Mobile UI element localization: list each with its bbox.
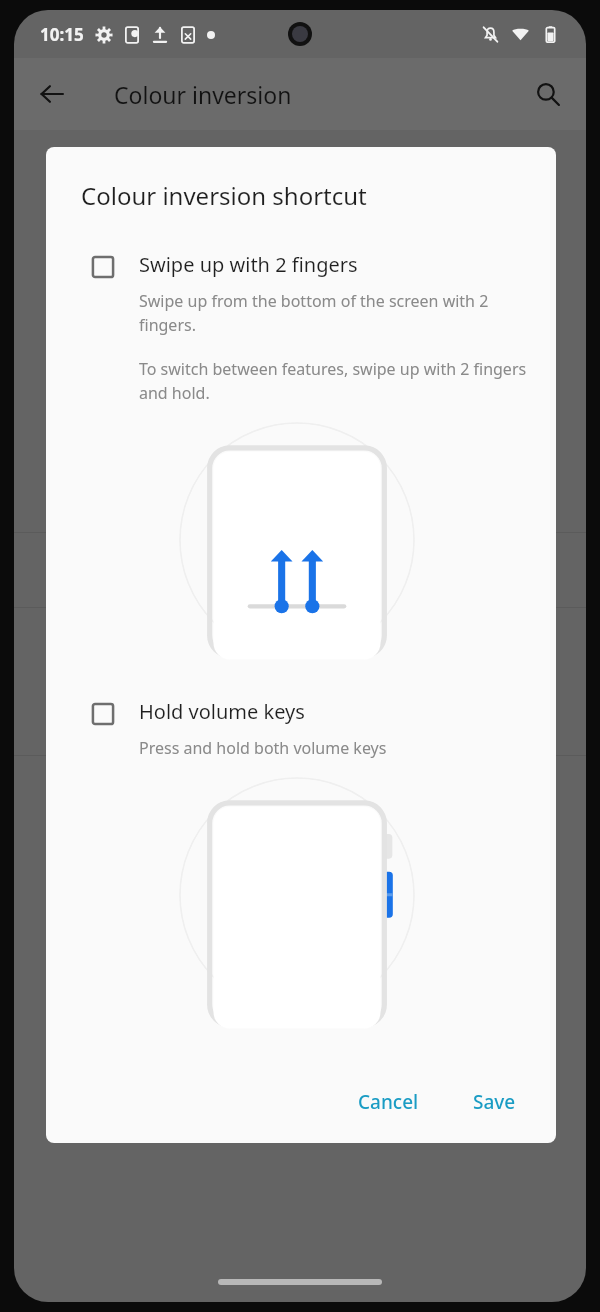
button[interactable]: Save — [459, 1077, 530, 1127]
button[interactable]: Back — [24, 66, 80, 122]
staticText: 10:15 — [40, 23, 84, 46]
button[interactable]: Cancel — [344, 1077, 433, 1127]
button[interactable]: Swipe up with 2 fingers — [46, 251, 556, 404]
button[interactable]: Hold volume keys — [46, 698, 556, 759]
staticText: Swipe up from the bottom of the screen w… — [139, 290, 528, 336]
button[interactable]: Search — [522, 68, 574, 120]
staticText: Save — [473, 1089, 516, 1115]
staticText: Cancel — [358, 1089, 419, 1115]
staticText: Press and hold both volume keys — [139, 737, 387, 759]
staticText: Swipe up with 2 fingers — [139, 251, 358, 278]
staticText: To switch between features, swipe up wit… — [139, 358, 528, 404]
staticText: Hold volume keys — [139, 698, 305, 725]
staticText: Colour inversion shortcut — [81, 179, 367, 212]
staticText: Colour inversion — [114, 79, 292, 110]
